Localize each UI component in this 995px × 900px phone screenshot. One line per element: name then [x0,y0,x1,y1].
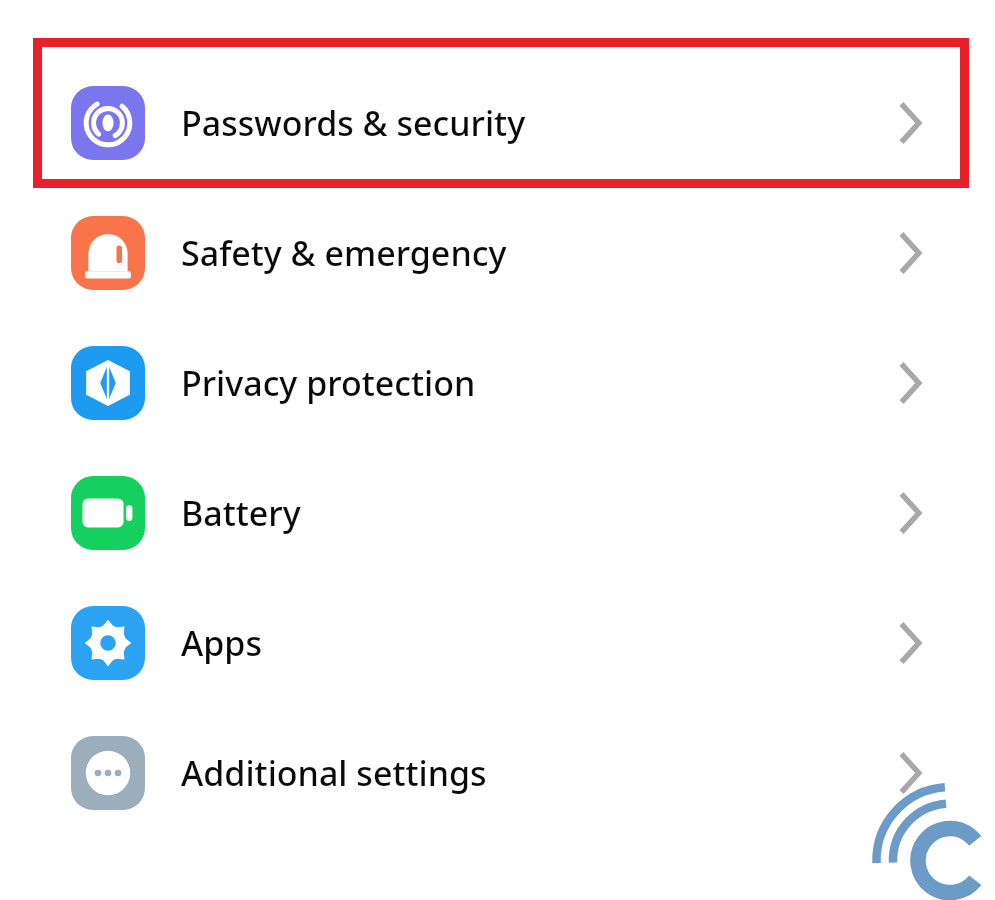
other: Open Safety & emergency [890,233,930,273]
button[interactable]: Privacy protection [0,318,995,448]
button[interactable]: Additional settings [0,708,995,838]
other: Open Additional settings [890,753,930,793]
button[interactable]: Passwords & security [0,58,995,188]
other: Open Apps [890,623,930,663]
staticText: Additional settings [181,750,487,796]
other: Open Passwords & security [890,103,930,143]
button[interactable]: Apps [0,578,995,708]
staticText: Battery [181,490,301,536]
other: Open Battery [890,493,930,533]
staticText: Passwords & security [181,100,526,146]
other: Open Privacy protection [890,363,930,403]
button[interactable]: Safety & emergency [0,188,995,318]
staticText: Safety & emergency [181,230,507,276]
staticText: Privacy protection [181,360,476,406]
button[interactable]: Battery [0,448,995,578]
staticText: Apps [181,620,262,666]
